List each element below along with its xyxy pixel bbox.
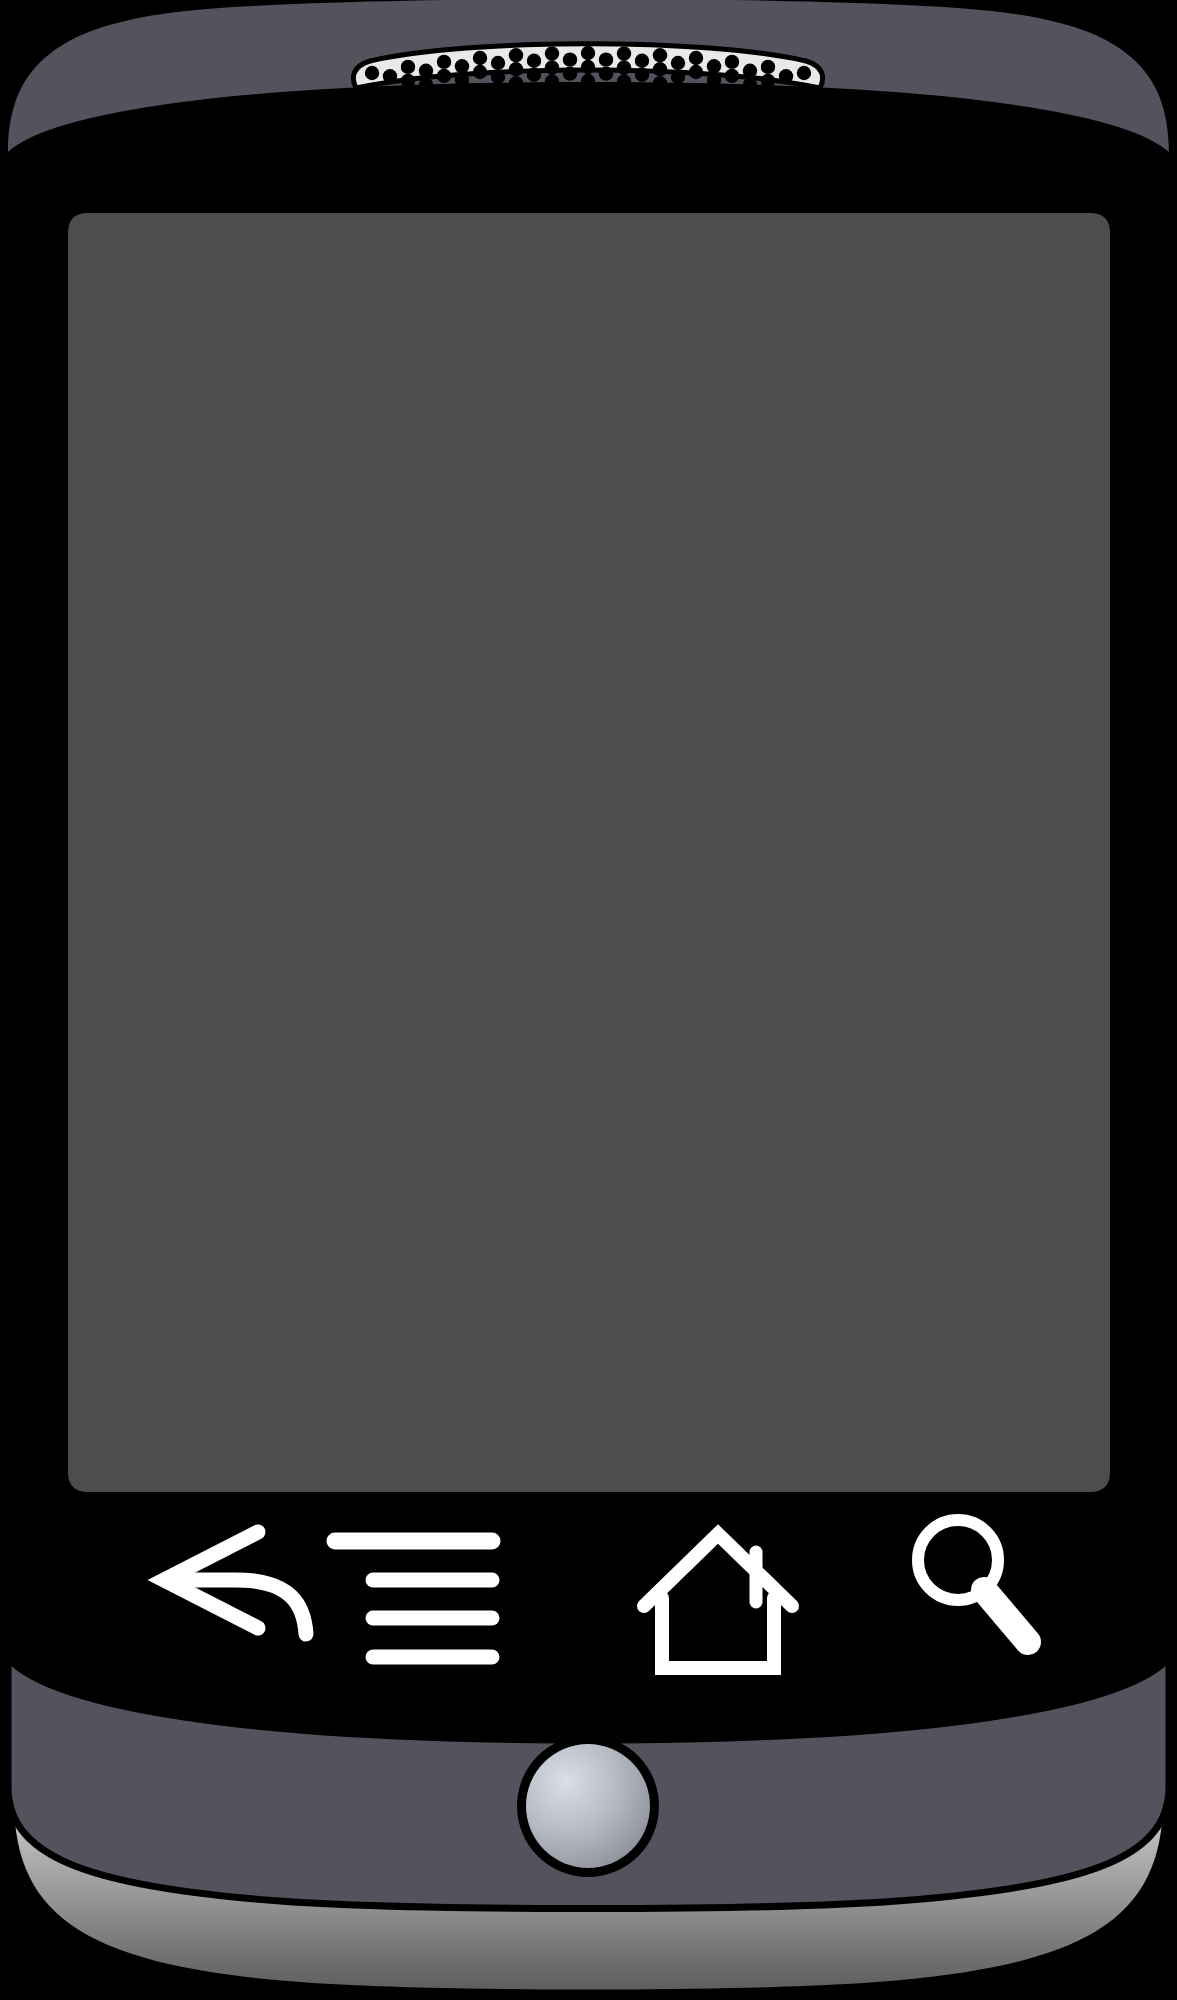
button[interactable]: Back — [130, 1510, 290, 1660]
button[interactable]: Search — [880, 1500, 1050, 1670]
button[interactable]: Trackball button — [512, 1730, 664, 1882]
button[interactable]: Home — [630, 1510, 810, 1685]
button[interactable]: Menu — [320, 1505, 515, 1680]
